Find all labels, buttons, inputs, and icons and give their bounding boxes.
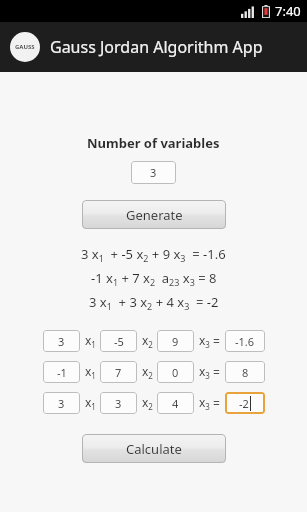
button[interactable]: -2 [225,392,265,414]
button[interactable]: 3 [100,392,137,414]
button[interactable]: 8 [225,361,265,383]
staticText: 3 x1 + 3 x2 + 4 x3 = -2 [89,293,219,313]
staticText: x2 [142,394,153,412]
staticText: Number of variables [87,134,220,152]
staticText: = [213,364,220,380]
staticText: x2 [142,332,153,350]
staticText: -1.6 [235,334,255,349]
staticText: x1 [85,394,96,412]
staticText: 3 [58,334,65,349]
staticText: x3 [199,332,210,350]
staticText: x1 [85,332,96,350]
staticText: x2 [142,363,153,381]
button[interactable]: 7 [100,361,137,383]
staticText: -1 [57,365,67,380]
button[interactable]: 3 [43,330,80,352]
button[interactable]: -1 [43,361,80,383]
staticText: = [213,333,220,349]
staticText: Gauss Jordan Algorithm App [50,36,263,58]
staticText: 8 [242,365,249,380]
staticText: 9 [172,334,179,349]
button[interactable]: -5 [100,330,137,352]
staticText: 3 x1 + -5 x2 + 9 x3 = -1.6 [81,245,226,265]
staticText: 3 [58,396,65,411]
staticText: -2 [239,396,249,411]
button[interactable]: 3 [43,392,80,414]
button[interactable]: 3 [131,161,176,184]
staticText: 0 [172,365,179,380]
staticText: 3 [150,165,157,180]
staticText: x1 [85,363,96,381]
staticText: 7 [115,365,122,380]
staticText: 7:40 [275,2,301,20]
staticText: = [213,395,220,411]
staticText: 4 [172,396,179,411]
button[interactable]: Calculate [82,434,226,463]
button[interactable]: Generate [82,200,226,229]
staticText: -1 x1 + 7 x2 a23 x3 = 8 [91,269,217,289]
button[interactable]: 0 [157,361,194,383]
button[interactable]: -1.6 [225,330,265,352]
staticText: Generate [126,206,183,224]
staticText: GAUSS [15,43,35,51]
staticText: 3 [115,396,122,411]
staticText: x3 [199,363,210,381]
staticText: Calculate [126,440,182,458]
button[interactable]: 4 [157,392,194,414]
button[interactable]: 9 [157,330,194,352]
staticText: x3 [199,394,210,412]
staticText: -5 [114,334,124,349]
